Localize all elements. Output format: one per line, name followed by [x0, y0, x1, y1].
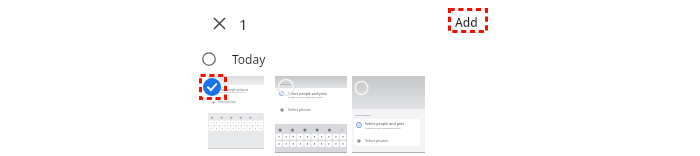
- staticText: Select photos: [218, 100, 236, 104]
- staticText: ADD PHOTOS: [355, 113, 371, 116]
- staticText: Select people and pets: [218, 88, 249, 92]
- staticText: Select photos: [365, 138, 389, 143]
- staticText: ADD PHOTOS: [277, 83, 291, 86]
- button[interactable]: ADD PHOTOS: [196, 76, 270, 153]
- staticText: Select people and pets: [365, 121, 405, 126]
- staticText: Create an auto-updating album: [218, 91, 246, 94]
- button[interactable]: Close: [208, 12, 230, 34]
- button[interactable]: ADD PHOTOS: [275, 76, 347, 153]
- staticText: Today: [232, 51, 266, 67]
- button[interactable]: Today: [202, 51, 266, 67]
- staticText: Create an auto-updating album: [365, 126, 401, 129]
- staticText: Add: [455, 14, 478, 30]
- staticText: Select people and pets: [288, 91, 327, 96]
- staticText: Create an auto-updating album: [288, 95, 324, 98]
- staticText: 1: [239, 14, 248, 34]
- button[interactable]: ADD PHOTOS: [352, 76, 425, 153]
- staticText: Select photos: [288, 107, 311, 112]
- staticText: ADD PHOTOS: [209, 82, 220, 84]
- button[interactable]: Add: [455, 14, 478, 30]
